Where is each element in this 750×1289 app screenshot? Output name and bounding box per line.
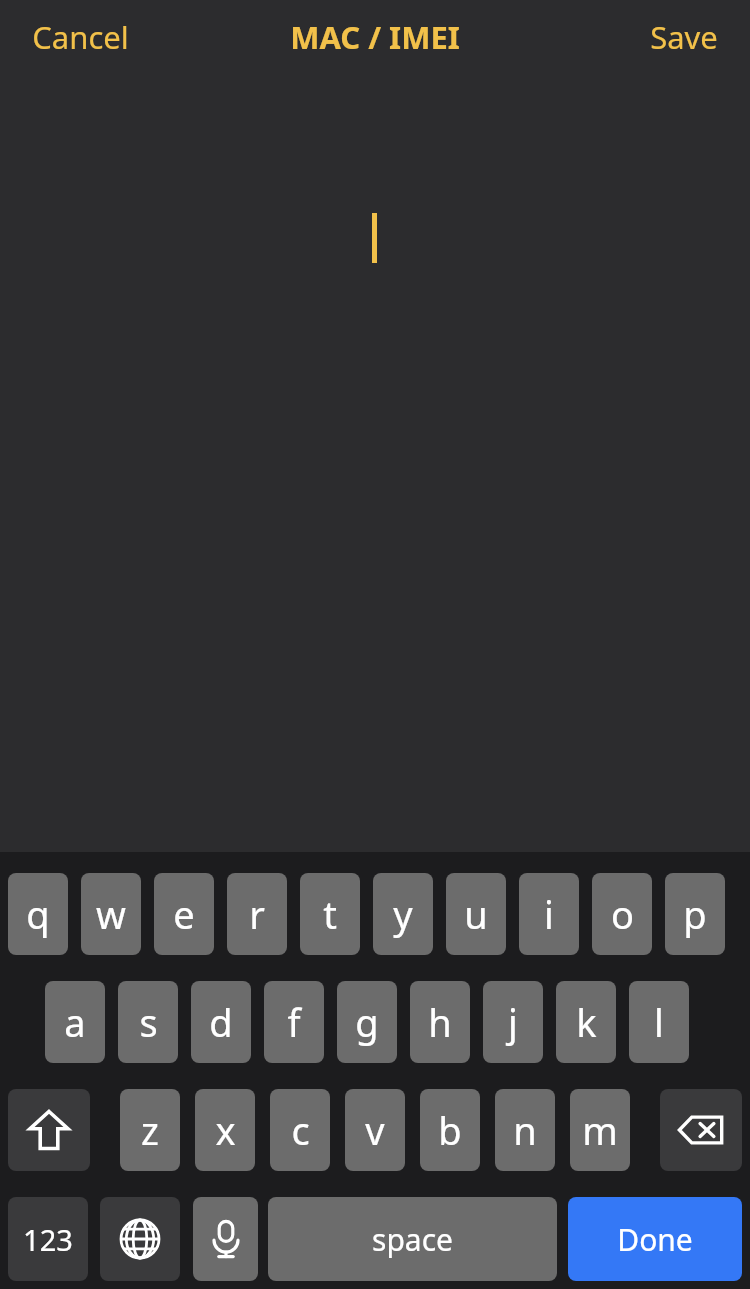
- button[interactable]: t: [300, 873, 360, 955]
- button[interactable]: g: [337, 981, 397, 1063]
- button[interactable]: Done: [568, 1197, 742, 1281]
- button[interactable]: h: [410, 981, 470, 1063]
- button[interactable]: d: [191, 981, 251, 1063]
- button[interactable]: w: [81, 873, 141, 955]
- button[interactable]: o: [592, 873, 652, 955]
- button[interactable]: v: [345, 1089, 405, 1171]
- staticText: space: [372, 1219, 453, 1260]
- staticText: q: [26, 888, 50, 940]
- staticText: d: [209, 996, 233, 1048]
- button[interactable]: 123: [8, 1197, 88, 1281]
- staticText: u: [464, 888, 488, 940]
- button[interactable]: space: [268, 1197, 557, 1281]
- staticText: h: [428, 996, 452, 1048]
- button[interactable]: k: [556, 981, 616, 1063]
- staticText: k: [576, 996, 597, 1048]
- button[interactable]: m: [570, 1089, 630, 1171]
- button[interactable]: Shift: [8, 1089, 90, 1171]
- button[interactable]: c: [270, 1089, 330, 1171]
- staticText: w: [96, 888, 126, 940]
- staticText: r: [249, 888, 265, 940]
- button[interactable]: b: [420, 1089, 480, 1171]
- staticText: t: [323, 888, 337, 940]
- button[interactable]: n: [495, 1089, 555, 1171]
- staticText: y: [393, 888, 413, 940]
- staticText: o: [611, 888, 634, 940]
- staticText: Done: [617, 1219, 693, 1260]
- button[interactable]: Voice input: [193, 1197, 258, 1281]
- staticText: e: [173, 888, 195, 940]
- button[interactable]: s: [118, 981, 178, 1063]
- button[interactable]: y: [373, 873, 433, 955]
- button[interactable]: i: [519, 873, 579, 955]
- button[interactable]: Save: [632, 10, 736, 64]
- button[interactable]: Backspace: [660, 1089, 742, 1171]
- button[interactable]: a: [45, 981, 105, 1063]
- staticText: m: [582, 1104, 618, 1156]
- button[interactable]: x: [195, 1089, 255, 1171]
- button[interactable]: r: [227, 873, 287, 955]
- staticText: 123: [23, 1220, 73, 1259]
- staticText: v: [365, 1104, 385, 1156]
- button[interactable]: Change keyboard language: [100, 1197, 180, 1281]
- staticText: g: [355, 996, 379, 1048]
- staticText: c: [291, 1104, 310, 1156]
- button[interactable]: z: [120, 1089, 180, 1171]
- staticText: x: [215, 1104, 236, 1156]
- button[interactable]: u: [446, 873, 506, 955]
- button[interactable]: l: [629, 981, 689, 1063]
- staticText: f: [287, 996, 301, 1048]
- button[interactable]: j: [483, 981, 543, 1063]
- button[interactable]: f: [264, 981, 324, 1063]
- staticText: a: [64, 996, 86, 1048]
- button[interactable]: p: [665, 873, 725, 955]
- staticText: b: [438, 1104, 462, 1156]
- staticText: MAC / IMEI: [290, 16, 460, 58]
- staticText: p: [683, 888, 707, 940]
- staticText: z: [141, 1104, 159, 1156]
- button[interactable]: q: [8, 873, 68, 955]
- staticText: Save: [650, 16, 718, 58]
- staticText: i: [544, 888, 554, 940]
- staticText: n: [513, 1104, 537, 1156]
- button[interactable]: e: [154, 873, 214, 955]
- button[interactable]: MAC / IMEI: [290, 16, 460, 58]
- button[interactable]: Cancel: [14, 10, 147, 64]
- staticText: s: [139, 996, 158, 1048]
- staticText: j: [508, 996, 518, 1048]
- staticText: l: [654, 996, 664, 1048]
- staticText: Cancel: [32, 16, 129, 58]
